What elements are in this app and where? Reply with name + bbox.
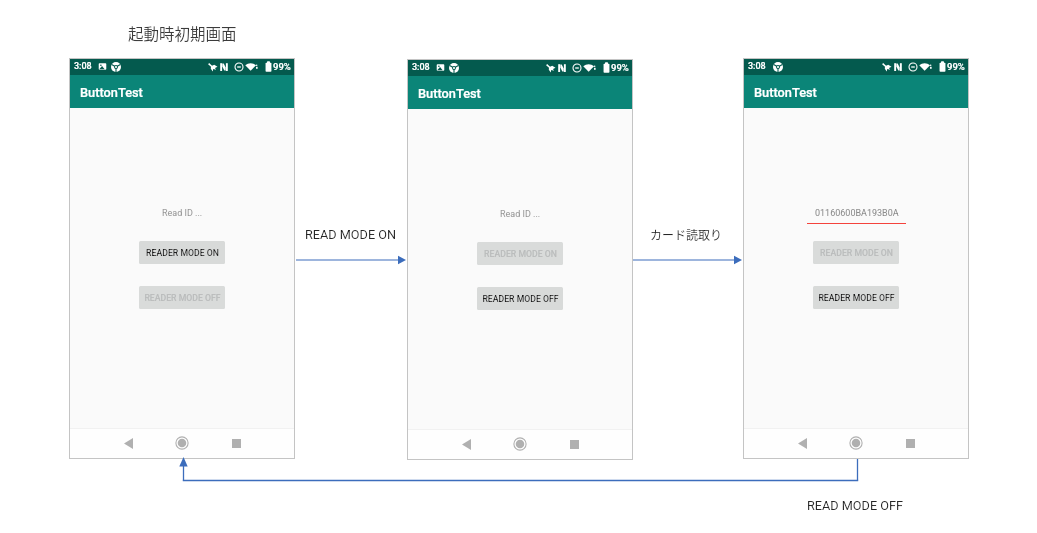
staticText: READER MODE ON [820,248,893,258]
staticText: 3:08 [74,61,92,72]
button[interactable]: READER MODE ON [139,241,225,264]
button[interactable]: READER MODE ON [813,241,899,264]
button[interactable]: Recents [225,432,247,454]
staticText: 01160600BA193B0A [815,208,899,219]
staticText: ButtonTest [418,86,481,101]
button[interactable]: Home [845,432,867,454]
staticText: READ MODE OFF [807,498,904,513]
button[interactable]: READER MODE ON [477,242,563,265]
button[interactable]: Recents [899,432,921,454]
staticText: 3:08 [748,61,766,72]
button[interactable]: Back [117,432,139,454]
button[interactable]: Recents [563,433,585,455]
staticText: ButtonTest [754,85,817,100]
staticText: ButtonTest [80,85,143,100]
staticText: 99% [273,61,291,72]
staticText: 99% [611,62,629,73]
staticText: カード読取り [650,226,723,243]
staticText: READER MODE ON [484,249,557,259]
staticText: 起動時初期画面 [128,22,237,44]
button[interactable]: Back [455,433,477,455]
button[interactable]: READER MODE OFF [813,286,899,309]
staticText: 99% [947,61,965,72]
staticText: Read ID ... [162,208,203,219]
button[interactable]: Back [791,432,813,454]
staticText: READ MODE ON [305,227,397,242]
staticText: 3:08 [412,62,430,73]
button[interactable]: READER MODE OFF [477,287,563,310]
staticText: READER MODE ON [146,248,219,258]
button[interactable]: READER MODE OFF [139,286,225,309]
staticText: READER MODE OFF [144,293,221,303]
staticText: READER MODE OFF [482,294,559,304]
button[interactable]: Home [171,432,193,454]
staticText: Read ID ... [500,209,541,220]
staticText: READER MODE OFF [818,293,895,303]
button[interactable]: Home [509,433,531,455]
